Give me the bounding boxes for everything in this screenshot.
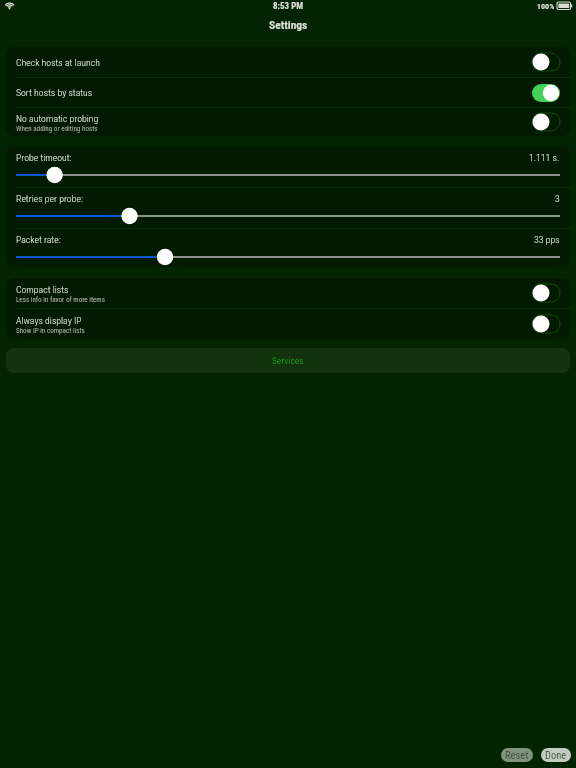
staticText: Done [545,749,567,761]
staticText: Always display IP [16,315,82,326]
button[interactable]: Check hosts at launch [532,53,560,71]
button[interactable]: Always display IP [532,315,560,333]
staticText: Reset [505,749,529,761]
button[interactable]: Done [541,748,571,762]
button[interactable]: No automatic probing [6,108,570,136]
button[interactable]: Compact lists [6,278,570,308]
staticText: Less info in favor of more items [16,295,105,303]
staticText: Check hosts at launch [16,57,100,68]
staticText: Sort hosts by status [16,87,93,98]
staticText: 1.111 s. [529,152,560,163]
button[interactable]: Compact lists [532,284,560,302]
button[interactable]: Probe timeout: [6,147,570,187]
staticText: 3 [555,193,560,204]
button[interactable]: Reset [501,748,533,762]
other: Wi-Fi [4,1,15,12]
button[interactable]: No automatic probing [532,113,560,131]
staticText: 8:53 PM [273,1,304,12]
staticText: Show IP in compact lists [16,326,85,334]
staticText: 33 pps [534,234,560,245]
button[interactable]: Retries per probe: [6,188,570,228]
staticText: 100% [537,2,555,11]
staticText: Settings [269,18,308,31]
button[interactable]: Sort hosts by status [532,84,560,102]
staticText: Probe timeout: [16,152,72,163]
button[interactable]: Packet rate: [6,229,570,267]
staticText: Compact lists [16,284,69,295]
staticText: No automatic probing [16,113,99,124]
button[interactable]: Services [6,348,570,373]
staticText: Services [272,355,304,366]
button[interactable]: Sort hosts by status [6,78,570,107]
staticText: When adding or editing hosts [16,124,98,132]
button[interactable]: Check hosts at launch [6,47,570,77]
staticText: Packet rate: [16,234,61,245]
button[interactable]: Always display IP [6,309,570,339]
staticText: Retries per probe: [16,193,83,204]
